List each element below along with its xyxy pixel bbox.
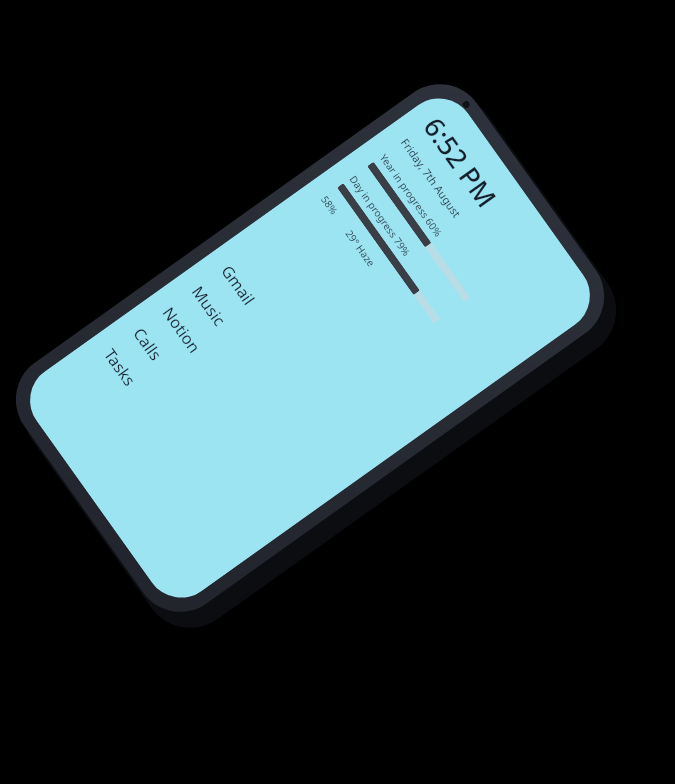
- other: Front camera: [461, 100, 471, 109]
- button[interactable]: 29° Haze: [342, 227, 378, 269]
- staticText: Gmail: [216, 261, 260, 309]
- staticText: Friday, 7th August: [398, 135, 465, 220]
- staticText: 29° Haze: [342, 227, 378, 269]
- button[interactable]: Day in progress 79%: [337, 172, 493, 376]
- button[interactable]: Notion: [152, 298, 316, 508]
- staticText: Notion: [158, 303, 206, 358]
- button[interactable]: Music: [181, 278, 345, 487]
- staticText: Year in progress 60%: [377, 151, 446, 240]
- staticText: 58%: [318, 193, 341, 217]
- button[interactable]: Year in progress 60%: [367, 151, 523, 355]
- button[interactable]: Tasks: [93, 340, 257, 550]
- staticText: Day in progress 79%: [347, 172, 414, 259]
- staticText: Music: [187, 282, 230, 330]
- button[interactable]: Calls: [123, 319, 287, 529]
- button[interactable]: Gmail: [211, 257, 375, 466]
- staticText: 6:52 PM: [416, 110, 505, 214]
- staticText: Tasks: [99, 344, 141, 391]
- staticText: Calls: [128, 323, 167, 366]
- button[interactable]: 58%: [318, 193, 341, 217]
